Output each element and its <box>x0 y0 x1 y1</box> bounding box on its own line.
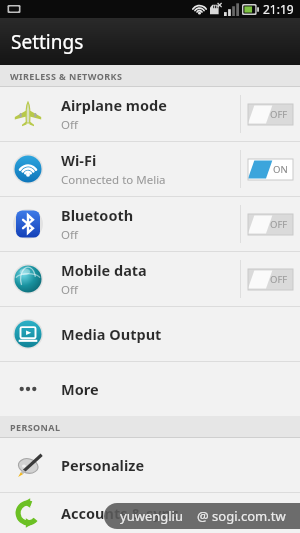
staticText: yuwengliu <box>120 507 183 525</box>
staticText: OFF <box>270 108 288 121</box>
button[interactable]: Accounts & sync <box>0 493 300 533</box>
button[interactable]: Switch off <box>248 269 293 290</box>
staticText: Settings <box>11 29 84 55</box>
staticText: Airplane mode <box>61 95 167 115</box>
button[interactable]: Airplane mode <box>0 87 300 141</box>
staticText: Wi-Fi <box>61 150 97 170</box>
staticText: Off <box>61 282 78 298</box>
staticText: Personalize <box>61 455 145 475</box>
staticText: Connected to Melia <box>61 172 166 188</box>
button[interactable]: More <box>0 362 300 416</box>
staticText: @ sogi.com.tw <box>197 507 286 525</box>
button[interactable]: Wi-Fi <box>0 142 300 196</box>
staticText: ON <box>273 163 288 176</box>
staticText: WIRELESS & NETWORKS <box>10 70 123 82</box>
button[interactable]: Media Output <box>0 307 300 361</box>
staticText: OFF <box>270 218 288 231</box>
staticText: Off <box>61 117 78 133</box>
button[interactable]: Switch off <box>248 104 293 125</box>
button[interactable]: Mobile data <box>0 252 300 306</box>
staticText: PERSONAL <box>10 421 61 433</box>
button[interactable]: Switch on <box>248 159 293 180</box>
staticText: Accounts & sync <box>61 503 179 523</box>
staticText: Off <box>61 227 78 243</box>
staticText: 21:19 <box>263 1 294 17</box>
button[interactable]: Bluetooth <box>0 197 300 251</box>
staticText: More <box>61 379 99 399</box>
button[interactable]: Switch off <box>248 214 293 235</box>
staticText: OFF <box>270 273 288 286</box>
staticText: Mobile data <box>61 260 147 280</box>
button[interactable]: Personalize <box>0 438 300 492</box>
staticText: Bluetooth <box>61 205 134 225</box>
staticText: Media Output <box>61 324 162 344</box>
